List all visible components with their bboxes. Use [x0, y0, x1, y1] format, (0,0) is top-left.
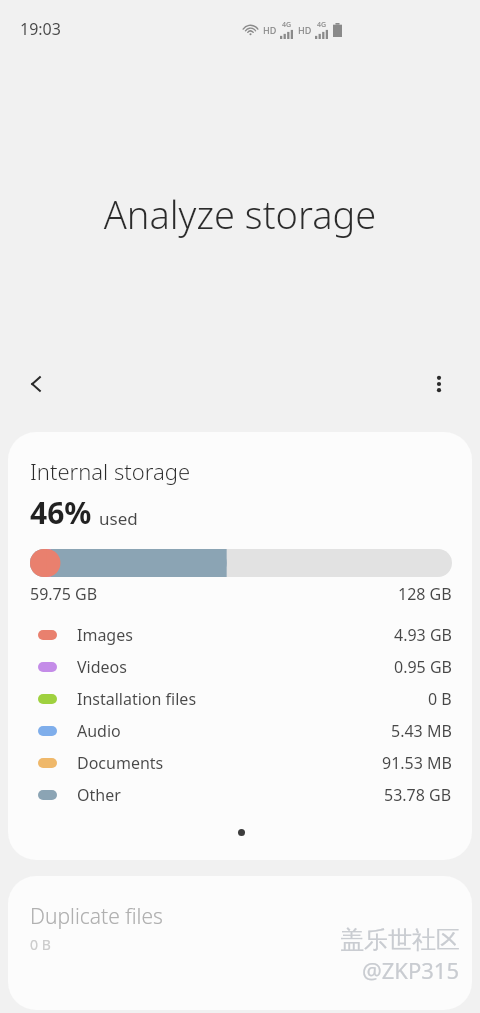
staticText: Duplicate files: [30, 902, 163, 931]
staticText: 59.75 GB: [30, 583, 98, 605]
staticText: 128 GB: [398, 583, 452, 605]
staticText: Videos: [77, 656, 127, 678]
staticText: 盖乐世社区: [340, 925, 460, 955]
staticText: 91.53 MB: [382, 752, 452, 774]
staticText: 5.43 MB: [391, 720, 452, 742]
staticText: 0 B: [30, 935, 51, 954]
staticText: 46%: [30, 492, 92, 533]
staticText: 4G: [317, 20, 327, 30]
staticText: Audio: [77, 720, 121, 742]
staticText: Internal storage: [30, 456, 191, 486]
staticText: Images: [77, 624, 133, 646]
button[interactable]: Back: [14, 361, 60, 407]
staticText: HD: [298, 24, 312, 36]
button[interactable]: More options: [416, 361, 462, 407]
button[interactable]: Duplicate files: [8, 876, 472, 1010]
staticText: Other: [77, 784, 121, 806]
staticText: 4.93 GB: [394, 624, 452, 646]
button[interactable]: Videos: [30, 651, 452, 683]
staticText: 19:03: [20, 18, 61, 40]
staticText: 53.78 GB: [384, 784, 452, 806]
button[interactable]: Internal storage: [8, 432, 472, 860]
staticText: used: [99, 507, 138, 530]
button[interactable]: Installation files: [30, 683, 452, 715]
staticText: 4G: [282, 20, 292, 30]
staticText: HD: [263, 24, 277, 36]
staticText: 0 B: [428, 688, 452, 710]
staticText: @ZKP315: [362, 955, 460, 985]
staticText: Installation files: [77, 688, 197, 710]
staticText: Analyze storage: [0, 188, 480, 240]
button[interactable]: Documents: [30, 747, 452, 779]
staticText: Documents: [77, 752, 164, 774]
button[interactable]: Other: [30, 779, 452, 811]
button[interactable]: Images: [30, 619, 452, 651]
button[interactable]: Audio: [30, 715, 452, 747]
staticText: 0.95 GB: [394, 656, 452, 678]
